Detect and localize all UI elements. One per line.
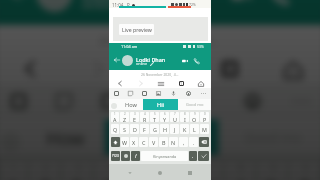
- staticText: P: [127, 2, 130, 8]
- staticText: V: [152, 139, 156, 146]
- button[interactable]: Slash: [131, 151, 140, 161]
- button[interactable]: Good mo: [218, 119, 320, 155]
- staticText: A: [113, 116, 117, 122]
- button[interactable]: Symbols: [111, 151, 120, 161]
- staticText: Lodki Dhan: [136, 56, 166, 63]
- button[interactable]: 4: [95, 161, 124, 180]
- button[interactable]: Camera: [85, 83, 131, 119]
- button[interactable]: Video call: [179, 55, 190, 66]
- button[interactable]: D: [130, 124, 139, 134]
- button[interactable]: More: [196, 88, 211, 99]
- button[interactable]: 9: [190, 112, 199, 122]
- button[interactable]: Back: [124, 167, 135, 178]
- staticText: online: [136, 61, 148, 66]
- staticText: L: [193, 126, 196, 133]
- button[interactable]: Voice: [166, 88, 181, 99]
- button[interactable]: Tabs: [196, 51, 261, 87]
- button[interactable]: Video call: [222, 0, 258, 12]
- button[interactable]: Tabs: [171, 78, 191, 89]
- button[interactable]: L: [190, 124, 199, 134]
- button[interactable]: 0: [200, 112, 209, 122]
- button[interactable]: Gallery: [131, 83, 180, 119]
- button[interactable]: 6: [160, 112, 169, 122]
- button[interactable]: Home: [191, 78, 211, 89]
- button[interactable]: G: [150, 124, 159, 134]
- button[interactable]: Voice call: [261, 0, 297, 12]
- staticText: 7: [205, 161, 212, 174]
- button[interactable]: H: [160, 124, 169, 134]
- staticText: online: [82, 0, 121, 12]
- button[interactable]: K: [180, 124, 189, 134]
- button[interactable]: .: [189, 137, 198, 147]
- button[interactable]: 3: [130, 112, 139, 122]
- button[interactable]: 5: [127, 161, 157, 180]
- button[interactable]: N: [169, 137, 178, 147]
- button[interactable]: F: [140, 124, 149, 134]
- button[interactable]: How: [30, 119, 101, 155]
- button[interactable]: Backspace: [199, 137, 209, 147]
- button[interactable]: 6: [160, 161, 189, 180]
- button[interactable]: Camera: [137, 88, 151, 99]
- button[interactable]: 7: [170, 112, 179, 122]
- button[interactable]: V: [149, 137, 158, 147]
- button[interactable]: 2: [120, 112, 129, 122]
- button[interactable]: Q: [111, 124, 119, 134]
- button[interactable]: Menu: [131, 51, 196, 87]
- button[interactable]: W: [121, 137, 129, 147]
- button[interactable]: Recents: [184, 167, 195, 178]
- button[interactable]: Gallery: [151, 88, 166, 99]
- button[interactable]: Voice call: [191, 55, 202, 66]
- button[interactable]: 4: [140, 112, 149, 122]
- button[interactable]: X: [130, 137, 138, 147]
- button[interactable]: Voice: [179, 83, 228, 119]
- button[interactable]: Forward: [62, 51, 131, 87]
- button[interactable]: Sticker: [123, 88, 137, 99]
- button[interactable]: Info: [228, 83, 277, 119]
- button[interactable]: Space: [141, 151, 188, 161]
- staticText: W: [122, 139, 128, 146]
- button[interactable]: Forward: [130, 78, 151, 89]
- button[interactable]: Hii: [143, 99, 178, 110]
- button[interactable]: S: [120, 124, 129, 134]
- button[interactable]: 1: [111, 112, 119, 122]
- button[interactable]: 5: [150, 112, 159, 122]
- button[interactable]: Emoji: [109, 88, 123, 99]
- button[interactable]: Emoji: [121, 151, 130, 161]
- button[interactable]: Enter: [198, 151, 209, 161]
- button[interactable]: Home: [261, 51, 320, 87]
- button[interactable]: Hii: [105, 119, 219, 155]
- button[interactable]: Back: [109, 78, 130, 89]
- button[interactable]: ,: [179, 137, 188, 147]
- button[interactable]: B: [159, 137, 168, 147]
- button[interactable]: Back: [0, 51, 62, 87]
- button[interactable]: Live preview: [119, 24, 154, 35]
- button[interactable]: Period: [189, 151, 197, 161]
- button[interactable]: 7: [192, 161, 222, 180]
- button[interactable]: Home: [154, 167, 165, 178]
- button[interactable]: C: [139, 137, 148, 147]
- button[interactable]: Info: [181, 88, 196, 99]
- button[interactable]: J: [170, 124, 179, 134]
- button[interactable]: Shift: [111, 137, 120, 147]
- button[interactable]: M: [200, 124, 209, 134]
- button[interactable]: How: [120, 99, 142, 110]
- button[interactable]: Emoji: [0, 83, 40, 119]
- button[interactable]: Back: [112, 55, 122, 65]
- button[interactable]: Good mo: [178, 99, 211, 110]
- button[interactable]: 8: [180, 112, 189, 122]
- button[interactable]: Menu: [151, 78, 171, 89]
- staticText: H: [163, 126, 167, 133]
- staticText: ?123: [112, 154, 119, 158]
- button[interactable]: Sticker: [40, 83, 85, 119]
